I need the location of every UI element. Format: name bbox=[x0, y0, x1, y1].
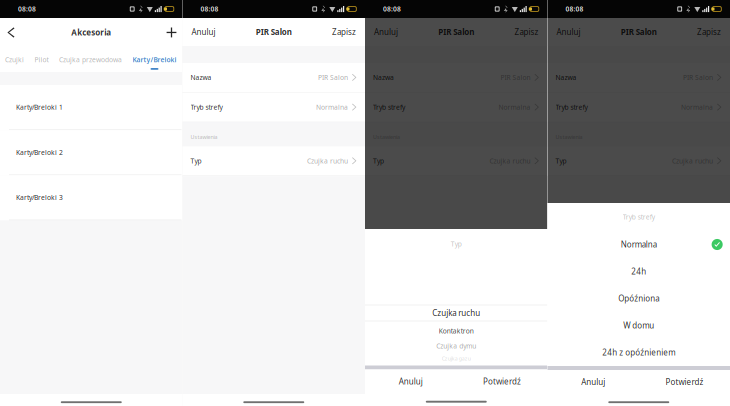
staticText: Zapisz bbox=[332, 27, 356, 37]
button[interactable]: Zapisz bbox=[332, 18, 356, 46]
staticText: Czujki bbox=[5, 55, 24, 64]
staticText: Tryb strefy bbox=[373, 103, 405, 112]
staticText: PIR Salon bbox=[683, 73, 713, 82]
staticText: Pilot bbox=[34, 55, 48, 64]
staticText: Tryb strefy bbox=[555, 103, 587, 112]
button[interactable]: Tryb strefy bbox=[547, 93, 730, 122]
staticText: Czujka przewodowa bbox=[59, 55, 122, 64]
staticText: Anuluj bbox=[191, 27, 215, 37]
staticText: PIR Salon bbox=[318, 73, 348, 82]
button[interactable]: Anuluj bbox=[556, 18, 580, 46]
staticText: PIR Salon bbox=[500, 73, 530, 82]
button[interactable]: Anuluj bbox=[191, 18, 215, 46]
button[interactable]: Normalna bbox=[547, 231, 730, 258]
button[interactable]: Dodaj bbox=[160, 18, 182, 47]
staticText: Ustawienia bbox=[555, 133, 582, 140]
button[interactable]: 24h bbox=[547, 258, 730, 285]
button[interactable]: Karty/Breloki 2 bbox=[0, 130, 182, 175]
staticText: Anuluj bbox=[399, 376, 423, 387]
staticText: Potwierdź bbox=[483, 376, 521, 387]
staticText: Typ bbox=[190, 156, 201, 165]
staticText: Karty/Breloki 3 bbox=[16, 193, 63, 202]
button[interactable]: Nazwa bbox=[547, 63, 730, 93]
button[interactable]: Nazwa bbox=[365, 63, 547, 93]
staticText: Zapisz bbox=[697, 27, 721, 37]
staticText: Zapisz bbox=[514, 27, 538, 37]
staticText: Nazwa bbox=[373, 73, 394, 82]
button[interactable]: Typ bbox=[365, 146, 547, 176]
staticText: Karty/Breloki 1 bbox=[16, 103, 63, 112]
staticText: Czujka ruchu bbox=[672, 156, 713, 165]
staticText: Typ bbox=[373, 156, 384, 165]
staticText: Normalna bbox=[498, 103, 530, 112]
staticText: Karty/Breloki bbox=[132, 55, 176, 64]
staticText: PIR Salon bbox=[256, 27, 292, 37]
staticText: Normalna bbox=[621, 239, 657, 250]
staticText: Typ bbox=[555, 156, 566, 165]
staticText: Anuluj bbox=[581, 377, 605, 387]
staticText: Kontaktron bbox=[439, 327, 474, 335]
staticText: Tryb strefy bbox=[623, 213, 655, 221]
staticText: Normalna bbox=[316, 103, 348, 112]
button[interactable]: Tryb strefy bbox=[365, 93, 547, 122]
button[interactable]: Wstecz bbox=[0, 18, 22, 47]
staticText: Tryb strefy bbox=[190, 103, 222, 112]
button[interactable]: Czujki bbox=[5, 47, 24, 71]
staticText: Czujka ruchu bbox=[307, 156, 348, 165]
staticText: Nazwa bbox=[190, 73, 211, 82]
button[interactable]: Czujka dymu bbox=[365, 340, 547, 351]
staticText: PIR Salon bbox=[438, 27, 474, 37]
button[interactable]: Kontaktron bbox=[365, 321, 547, 340]
button[interactable]: Czujka gazu bbox=[365, 351, 547, 365]
staticText: W domu bbox=[623, 320, 654, 331]
staticText: Ustawienia bbox=[190, 133, 217, 140]
staticText: Ustawienia bbox=[373, 133, 400, 140]
button[interactable]: Anuluj bbox=[365, 369, 456, 393]
button[interactable]: Nazwa bbox=[182, 63, 365, 93]
button[interactable]: Tryb strefy bbox=[182, 93, 365, 122]
button[interactable]: Typ bbox=[182, 146, 365, 176]
button[interactable]: Anuluj bbox=[547, 370, 639, 394]
button[interactable]: W domu bbox=[547, 312, 730, 339]
staticText: Czujka gazu bbox=[442, 355, 471, 362]
button[interactable]: Zapisz bbox=[697, 18, 721, 46]
button[interactable]: Karty/Breloki 1 bbox=[0, 85, 182, 130]
staticText: PIR Salon bbox=[621, 27, 657, 37]
staticText: Nazwa bbox=[555, 73, 576, 82]
staticText: Potwierdź bbox=[665, 377, 703, 387]
staticText: Typ bbox=[451, 240, 462, 248]
staticText: 08:08 bbox=[18, 5, 36, 13]
staticText: 24h bbox=[631, 266, 646, 277]
staticText: Akcesoria bbox=[71, 27, 111, 38]
button[interactable]: Zapisz bbox=[514, 18, 538, 46]
staticText: Normalna bbox=[681, 103, 713, 112]
staticText: Anuluj bbox=[556, 27, 580, 37]
staticText: 08:08 bbox=[200, 5, 218, 13]
button[interactable]: Anuluj bbox=[374, 18, 398, 46]
staticText: Czujka ruchu bbox=[489, 156, 530, 165]
staticText: 08:08 bbox=[565, 5, 583, 13]
button[interactable]: Czujka ruchu bbox=[365, 305, 547, 320]
button[interactable]: Opóźniona bbox=[547, 285, 730, 312]
button[interactable]: Pilot bbox=[34, 47, 48, 71]
staticText: 08:08 bbox=[383, 5, 401, 13]
staticText: 24h z opóźnieniem bbox=[602, 347, 675, 358]
button[interactable]: Karty/Breloki bbox=[132, 47, 176, 71]
staticText: Anuluj bbox=[374, 27, 398, 37]
staticText: Opóźniona bbox=[618, 293, 659, 304]
staticText: Czujka ruchu bbox=[432, 308, 480, 318]
button[interactable]: Potwierdź bbox=[456, 369, 547, 393]
button[interactable]: Czujka przewodowa bbox=[59, 47, 122, 71]
button[interactable]: 24h z opóźnieniem bbox=[547, 339, 730, 366]
button[interactable]: Potwierdź bbox=[639, 370, 730, 394]
button[interactable]: Karty/Breloki 3 bbox=[0, 175, 182, 220]
staticText: Czujka dymu bbox=[436, 342, 476, 350]
staticText: Karty/Breloki 2 bbox=[16, 148, 63, 157]
